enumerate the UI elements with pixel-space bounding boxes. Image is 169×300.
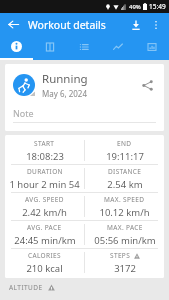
staticText: MAX. PACE — [107, 223, 143, 232]
staticText: ALTITUDE — [9, 283, 43, 292]
staticText: 49% — [129, 3, 141, 11]
button[interactable]: Info — [0, 36, 33, 60]
staticText: Note — [13, 107, 34, 119]
staticText: MAX. SPEED — [104, 195, 145, 204]
button[interactable]: AVG. PACE — [5, 221, 84, 248]
button[interactable]: AVG. SPEED — [5, 193, 84, 220]
button[interactable]: Note — [13, 107, 156, 123]
staticText: Running — [42, 71, 88, 87]
staticText: DISTANCE — [108, 167, 142, 176]
staticText: 3172 — [114, 262, 136, 275]
button[interactable]: MAX. PACE — [85, 221, 164, 248]
staticText: CALORIES — [28, 251, 61, 260]
staticText: 24:45 min/km — [14, 234, 76, 247]
staticText: 210 kcal — [26, 262, 63, 275]
staticText: Workout details — [28, 18, 106, 32]
staticText: 15:49 — [149, 2, 166, 11]
button[interactable]: Map — [33, 36, 67, 60]
button[interactable]: Share — [138, 76, 156, 94]
button[interactable]: END — [85, 137, 164, 164]
button[interactable]: MAX. SPEED — [85, 193, 164, 220]
button[interactable]: CALORIES — [5, 249, 84, 276]
button[interactable]: Chart — [101, 36, 135, 60]
staticText: 10.12 km/h — [99, 206, 150, 219]
button[interactable]: DURATION — [5, 165, 84, 192]
staticText: DURATION — [27, 167, 63, 176]
button[interactable]: Graph — [135, 36, 169, 60]
staticText: 05:56 min/km — [94, 234, 156, 247]
staticText: END — [117, 139, 132, 148]
button[interactable]: START — [5, 137, 84, 164]
staticText: 2.54 km — [107, 178, 143, 191]
button[interactable]: Laps — [67, 36, 101, 60]
staticText: May 6, 2024 — [42, 88, 88, 99]
staticText: STEPS — [110, 251, 131, 260]
staticText: 18:08:23 — [26, 150, 64, 163]
staticText: START — [34, 139, 55, 148]
button[interactable]: Back — [5, 16, 22, 33]
staticText: AVG. PACE — [27, 223, 62, 232]
staticText: 1 hour 2 min 54 sec — [6, 178, 83, 191]
button[interactable]: More options — [147, 16, 164, 33]
staticText: 2.42 km/h — [22, 206, 67, 219]
staticText: 19:11:17 — [106, 150, 144, 163]
button[interactable]: Download — [127, 16, 144, 33]
button[interactable]: STEPS — [85, 249, 164, 276]
button[interactable]: DISTANCE — [85, 165, 164, 192]
staticText: AVG. SPEED — [25, 195, 64, 204]
